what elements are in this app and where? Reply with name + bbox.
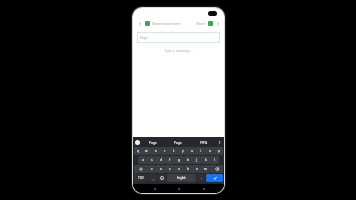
staticText: Page bbox=[149, 140, 157, 144]
button[interactable]: y bbox=[178, 147, 187, 155]
staticText: b bbox=[187, 167, 189, 171]
staticText: r bbox=[164, 149, 166, 153]
staticText: Type a message... bbox=[133, 48, 224, 53]
button[interactable]: e bbox=[151, 147, 160, 155]
staticText: x bbox=[160, 167, 162, 171]
button[interactable]: PIPA bbox=[191, 138, 217, 146]
button[interactable]: z bbox=[147, 165, 156, 173]
staticText: d bbox=[160, 158, 162, 162]
button[interactable]: Google bbox=[135, 140, 140, 145]
button[interactable]: ?123 bbox=[134, 174, 148, 182]
staticText: f bbox=[169, 158, 171, 162]
staticText: y bbox=[182, 149, 184, 153]
button[interactable]: Voice input bbox=[217, 140, 222, 145]
button[interactable]: u bbox=[187, 147, 196, 155]
button[interactable]: r bbox=[160, 147, 169, 155]
staticText: Page bbox=[174, 140, 182, 144]
button[interactable]: Back bbox=[136, 20, 143, 27]
staticText: , bbox=[153, 176, 154, 180]
staticText: c bbox=[169, 167, 171, 171]
staticText: t bbox=[173, 149, 175, 153]
staticText: l bbox=[214, 158, 215, 162]
button[interactable]: s bbox=[147, 156, 156, 164]
button[interactable]: w bbox=[142, 147, 151, 155]
staticText: Page bbox=[140, 35, 148, 40]
staticText: g bbox=[178, 158, 180, 162]
staticText: q bbox=[137, 149, 139, 153]
button[interactable]: Back bbox=[200, 185, 207, 192]
button[interactable]: x bbox=[156, 165, 165, 173]
button[interactable]: h bbox=[183, 156, 192, 164]
button[interactable]: Home bbox=[175, 185, 182, 192]
staticText: v bbox=[178, 167, 180, 171]
button[interactable]: Enter bbox=[206, 174, 223, 182]
button[interactable]: Emoji bbox=[158, 174, 166, 182]
button[interactable]: n bbox=[192, 165, 201, 173]
button[interactable]: m bbox=[201, 165, 210, 173]
staticText: e bbox=[155, 149, 157, 153]
staticText: j bbox=[196, 158, 197, 162]
staticText: ?123 bbox=[138, 176, 144, 180]
button[interactable]: App icon bbox=[145, 21, 150, 26]
staticText: p bbox=[218, 149, 220, 153]
button[interactable]: j bbox=[192, 156, 201, 164]
staticText: m bbox=[204, 167, 207, 171]
staticText: s bbox=[151, 158, 153, 162]
button[interactable]: . bbox=[197, 174, 205, 182]
button[interactable]: , bbox=[149, 174, 157, 182]
staticText: k bbox=[205, 158, 207, 162]
button[interactable]: Sheets bbox=[208, 21, 213, 26]
staticText: Sheet bbox=[196, 21, 206, 26]
button[interactable]: f bbox=[165, 156, 174, 164]
staticText: w bbox=[145, 149, 148, 153]
button[interactable]: b bbox=[183, 165, 192, 173]
staticText: n bbox=[196, 167, 198, 171]
button[interactable]: l bbox=[210, 156, 219, 164]
staticText: z bbox=[151, 167, 153, 171]
button[interactable]: Page bbox=[140, 138, 165, 146]
button[interactable]: Send bbox=[215, 21, 221, 27]
button[interactable]: Page bbox=[137, 32, 220, 43]
button[interactable]: Recents bbox=[151, 185, 158, 192]
staticText: a bbox=[142, 158, 144, 162]
button[interactable]: p bbox=[214, 147, 223, 155]
button[interactable]: a bbox=[138, 156, 147, 164]
button[interactable]: Shift bbox=[134, 165, 147, 173]
button[interactable]: i bbox=[196, 147, 205, 155]
staticText: u bbox=[191, 149, 193, 153]
staticText: o bbox=[209, 149, 211, 153]
button[interactable]: Backspace bbox=[210, 165, 223, 173]
button[interactable]: d bbox=[156, 156, 165, 164]
button[interactable]: v bbox=[174, 165, 183, 173]
button[interactable]: English bbox=[167, 174, 196, 182]
button[interactable]: k bbox=[201, 156, 210, 164]
button[interactable]: t bbox=[169, 147, 178, 155]
button[interactable]: c bbox=[165, 165, 174, 173]
button[interactable]: o bbox=[205, 147, 214, 155]
button[interactable]: g bbox=[174, 156, 183, 164]
staticText: Sheet name here bbox=[152, 21, 181, 26]
button[interactable]: q bbox=[134, 147, 142, 155]
staticText: English bbox=[177, 176, 186, 180]
button[interactable]: Page bbox=[165, 138, 191, 146]
staticText: i bbox=[200, 149, 201, 153]
staticText: PIPA bbox=[200, 140, 208, 144]
staticText: . bbox=[201, 176, 202, 180]
staticText: h bbox=[187, 158, 189, 162]
